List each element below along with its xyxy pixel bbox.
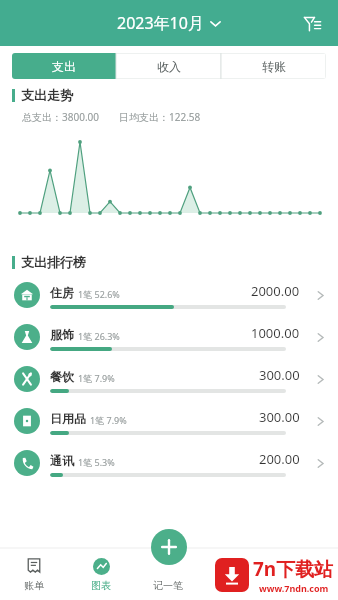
staticText: 餐饮 — [50, 369, 74, 384]
staticText: 总支出：3800.00 — [22, 110, 99, 124]
staticText: 1笔 7.9% — [90, 414, 127, 426]
staticText: 200.00 — [259, 450, 300, 468]
staticText: 账单 — [24, 579, 44, 592]
button[interactable]: Filter — [296, 7, 328, 39]
button[interactable]: 住房 — [0, 274, 338, 316]
staticText: 1笔 52.6% — [78, 288, 120, 300]
button[interactable]: 通讯 — [0, 442, 338, 484]
button[interactable]: 记一笔 — [134, 548, 202, 600]
staticText: 7n下载站 — [253, 556, 334, 582]
staticText: 1笔 7.9% — [78, 372, 115, 384]
staticText: www.7ndn.com — [259, 582, 329, 594]
staticText: 通讯 — [50, 453, 74, 468]
button[interactable]: Add record — [151, 529, 187, 565]
staticText: 支出走势 — [21, 87, 73, 103]
staticText: 服饰 — [50, 327, 74, 342]
staticText: 支出 — [52, 59, 76, 74]
staticText: 300.00 — [259, 408, 300, 426]
button[interactable]: 图表 — [67, 548, 134, 600]
staticText: 1笔 26.3% — [78, 330, 120, 342]
button[interactable]: 服饰 — [0, 316, 338, 358]
staticText: 1000.00 — [251, 324, 300, 342]
button[interactable]: 餐饮 — [0, 358, 338, 400]
staticText: 住房 — [50, 285, 74, 300]
button[interactable]: 支出 — [12, 53, 116, 79]
staticText: 2023年10月 — [117, 12, 204, 34]
staticText: 2000.00 — [251, 282, 300, 300]
staticText: 记一笔 — [153, 579, 183, 592]
staticText: 收入 — [157, 59, 181, 74]
staticText: 支出排行榜 — [21, 254, 86, 270]
staticText: 日均支出：122.58 — [119, 110, 201, 124]
staticText: 图表 — [91, 579, 111, 592]
staticText: 转账 — [262, 59, 286, 74]
button[interactable]: 转账 — [221, 53, 326, 79]
button[interactable]: 收入 — [116, 53, 221, 79]
button[interactable]: 2023年10月 — [109, 8, 229, 38]
staticText: 300.00 — [259, 366, 300, 384]
staticText: 日用品 — [50, 411, 86, 426]
button[interactable]: 账单 — [0, 548, 67, 600]
button[interactable]: 日用品 — [0, 400, 338, 442]
staticText: 1笔 5.3% — [78, 456, 115, 468]
